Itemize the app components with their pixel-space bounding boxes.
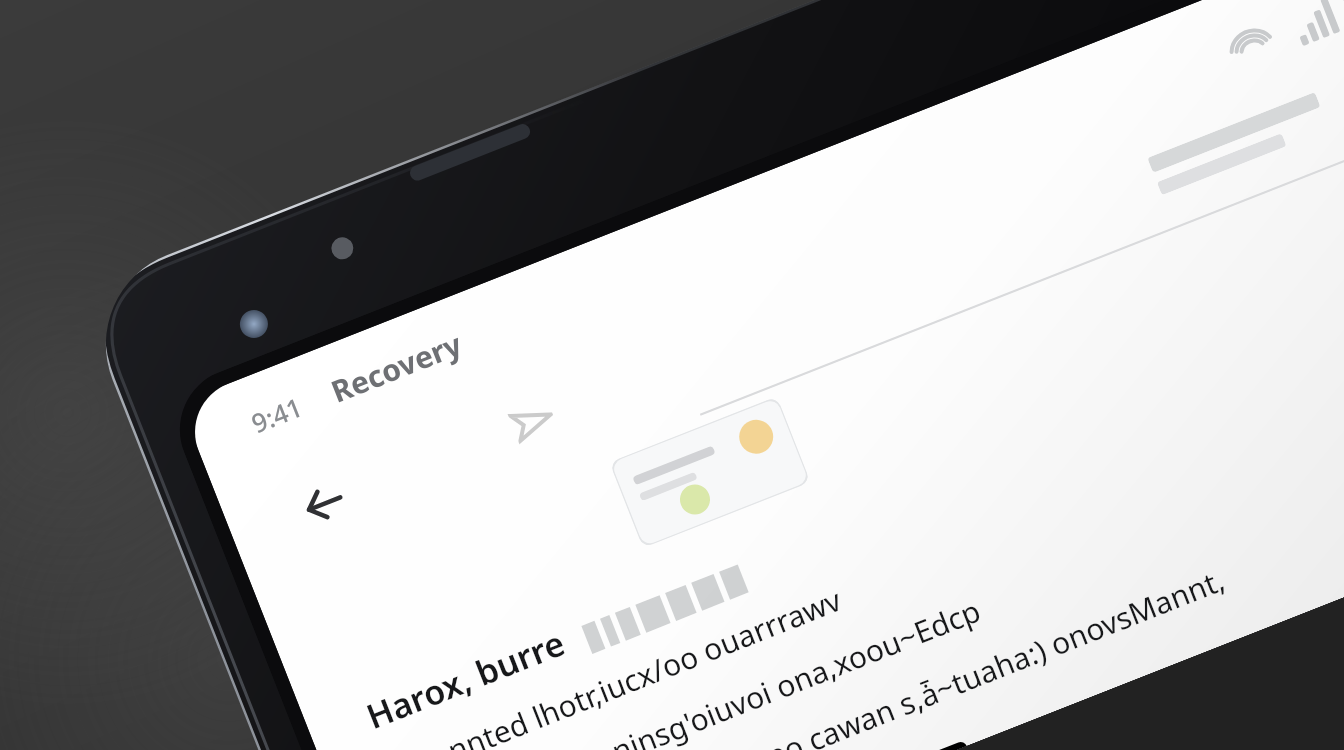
staticText: Recovery: [325, 323, 467, 412]
button[interactable]: [609, 396, 811, 548]
staticText: 9:41: [246, 389, 307, 440]
button[interactable]: Back: [275, 454, 374, 553]
button[interactable]: [1147, 63, 1344, 195]
staticText: Vao froodbenoninsg'oiuvoi ona,xoou~Edcp: [411, 590, 986, 750]
staticText: Harox, burre: [360, 619, 572, 739]
button[interactable]: Send: [486, 375, 580, 468]
staticText: thuxs p\k nogdrg aieᴧsᴧ: it-\sgotteyKlob…: [467, 619, 1230, 750]
staticText: vhe b, d,rdbo 6eoio\s'ooeo cawan s,ǡ~tua…: [439, 559, 1231, 750]
staticText: ou onnted lhotr,iucx/oo ouarrrawv: [383, 579, 847, 750]
